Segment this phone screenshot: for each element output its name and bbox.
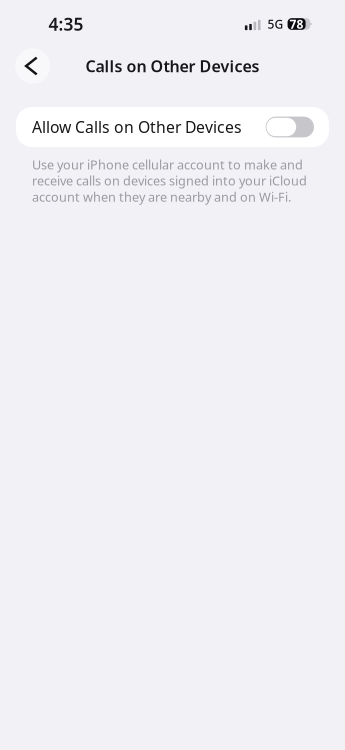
staticText: Allow Calls on Other Devices bbox=[32, 116, 242, 138]
staticText: Calls on Other Devices bbox=[85, 55, 259, 77]
staticText: 78 bbox=[290, 16, 304, 32]
button[interactable]: Back bbox=[15, 48, 50, 84]
staticText: 5G bbox=[268, 16, 284, 32]
button[interactable]: Allow Calls on Other Devices bbox=[16, 107, 329, 147]
staticText: Use your iPhone cellular account to make… bbox=[32, 156, 307, 205]
staticText: 4:35 bbox=[48, 12, 83, 35]
